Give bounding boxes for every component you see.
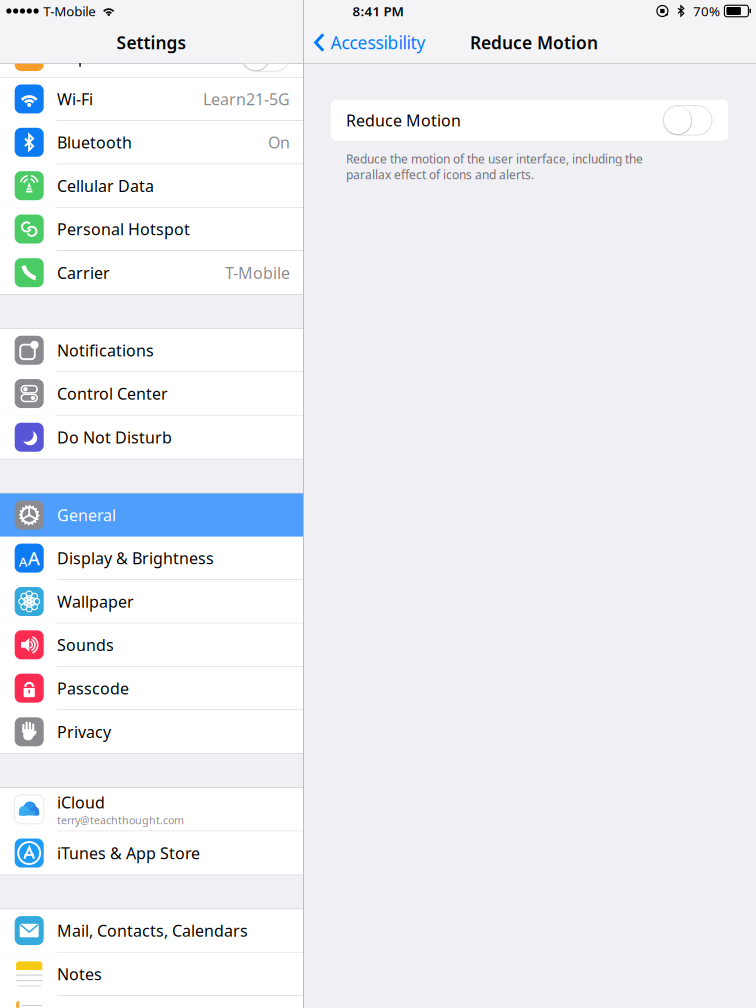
staticText: Display & Brightness [57, 547, 214, 569]
staticText: Notes [57, 963, 102, 984]
staticText: A [19, 553, 28, 570]
staticText: On [268, 132, 290, 153]
staticText: Bluetooth [57, 132, 132, 153]
staticText: Do Not Disturb [57, 427, 172, 448]
staticText: Settings [116, 31, 186, 54]
staticText: Airplane Mode [57, 46, 168, 67]
staticText: Sounds [57, 634, 114, 655]
button[interactable]: Notifications [0, 329, 303, 372]
button[interactable]: Wallpaper [0, 580, 303, 623]
staticText: Control Center [57, 383, 168, 404]
staticText: Learn21-5G [203, 88, 290, 110]
button[interactable]: Wi-Fi [0, 78, 303, 121]
staticText: Privacy [57, 721, 111, 742]
staticText: General [57, 504, 116, 526]
staticText: 70% [693, 2, 720, 20]
staticText: Wi-Fi [57, 88, 93, 110]
button[interactable]: General [0, 493, 303, 537]
staticText: iTunes & App Store [57, 842, 200, 864]
button[interactable]: Mail, Contacts, Calendars [0, 909, 303, 953]
staticText: Reduce the motion of the user interface,… [346, 151, 643, 183]
button[interactable]: Accessibility [304, 31, 426, 54]
button[interactable]: iCloud [0, 788, 303, 831]
button[interactable]: Reduce Motion [331, 100, 728, 141]
staticText: Cellular Data [57, 175, 154, 196]
staticText: Mail, Contacts, Calendars [57, 920, 248, 941]
staticText: Reduce Motion [346, 110, 461, 131]
staticText: 8:41 PM [352, 2, 403, 20]
staticText: Carrier [57, 262, 110, 283]
button[interactable]: Carrier [0, 251, 303, 294]
staticText: Accessibility [331, 31, 426, 54]
button[interactable]: Passcode [0, 667, 303, 710]
button[interactable]: Bluetooth [0, 121, 303, 164]
button[interactable]: A [0, 537, 303, 580]
staticText: Passcode [57, 678, 129, 699]
staticText: Personal Hotspot [57, 218, 190, 240]
button[interactable]: Personal Hotspot [0, 208, 303, 251]
button[interactable]: Control Center [0, 372, 303, 416]
staticText: Wallpaper [57, 591, 134, 612]
button[interactable]: Privacy [0, 710, 303, 754]
button[interactable]: iTunes & App Store [0, 831, 303, 875]
button[interactable]: Cellular Data [0, 164, 303, 208]
staticText: A [28, 546, 40, 570]
staticText: terry@teachthought.com [57, 813, 184, 827]
staticText: T-Mobile [225, 262, 290, 283]
staticText: Reduce Motion [470, 31, 598, 54]
staticText: T-Mobile [43, 2, 96, 20]
staticText: Notifications [57, 340, 154, 361]
button[interactable]: Sounds [0, 623, 303, 667]
button[interactable]: Do Not Disturb [0, 416, 303, 459]
staticText: iCloud [57, 792, 105, 813]
button[interactable]: Notes [0, 953, 303, 996]
